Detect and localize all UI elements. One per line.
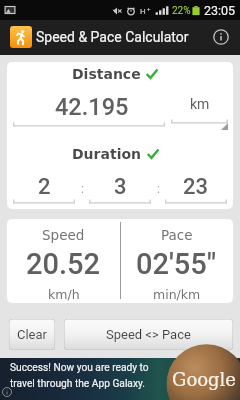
staticText: Duration: [72, 146, 142, 162]
staticText: +: [147, 5, 151, 12]
staticText: 02'55": [136, 247, 217, 281]
button[interactable]: App icon: [10, 26, 32, 48]
staticText: km/h: [48, 287, 80, 302]
staticText: H: [140, 7, 146, 16]
button[interactable]: Advertisement: [0, 358, 240, 400]
staticText: Clear: [17, 327, 47, 342]
staticText: :: [157, 182, 160, 196]
staticText: min/km: [153, 287, 201, 302]
button[interactable]: 23: [165, 174, 227, 204]
button[interactable]: 42.195: [13, 91, 165, 127]
staticText: travel through the App Galaxy.: [10, 378, 145, 390]
staticText: 22%: [172, 5, 191, 17]
staticText: 42.195: [55, 93, 129, 121]
staticText: Pace: [161, 227, 193, 243]
staticText: Success! Now you are ready to: [10, 362, 149, 374]
staticText: Speed: [42, 227, 85, 243]
staticText: Speed <> Pace: [106, 327, 191, 342]
button[interactable]: Distance unit: [171, 88, 228, 127]
button[interactable]: 3: [89, 174, 151, 204]
staticText: 23:05: [204, 3, 236, 18]
staticText: Speed & Pace Calculator: [36, 29, 189, 45]
staticText: Google: [172, 369, 236, 390]
button[interactable]: Info: [206, 22, 236, 52]
staticText: km: [190, 96, 210, 112]
staticText: 2: [38, 174, 51, 200]
button[interactable]: Pace: [120, 219, 233, 303]
button[interactable]: Speed: [7, 219, 120, 303]
staticText: 23: [183, 174, 209, 200]
button[interactable]: Clear: [9, 319, 55, 350]
staticText: :: [81, 182, 84, 196]
staticText: Distance: [72, 66, 141, 82]
button[interactable]: 2: [13, 174, 75, 204]
button[interactable]: Speed <> Pace: [64, 319, 233, 350]
staticText: 3: [114, 174, 127, 200]
staticText: 20.52: [26, 247, 101, 281]
